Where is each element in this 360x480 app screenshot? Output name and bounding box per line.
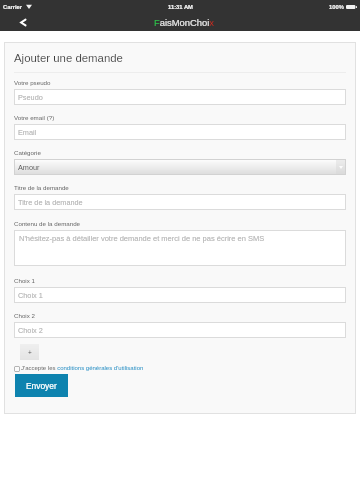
staticText: + xyxy=(28,349,32,356)
button[interactable]: Amour xyxy=(14,159,346,175)
button[interactable]: Envoyer xyxy=(15,374,68,397)
button[interactable]: Pseudo xyxy=(14,89,346,105)
staticText: Votre email (?) xyxy=(14,114,55,121)
staticText: Contenu de la demande xyxy=(14,220,81,227)
staticText: 11:31 AM xyxy=(168,4,193,10)
staticText: Carrier xyxy=(3,4,23,10)
staticText: Catégorie xyxy=(14,149,41,156)
button[interactable]: Titre de la demande xyxy=(14,194,346,210)
button[interactable]: Email xyxy=(14,124,346,140)
button[interactable]: Back xyxy=(0,13,34,31)
staticText: Email xyxy=(18,128,37,136)
staticText: Titre de la demande xyxy=(18,198,83,206)
staticText: Choix 1 xyxy=(18,291,43,299)
staticText: Titre de la demande xyxy=(14,184,69,191)
staticText: Ajouter une demande xyxy=(14,52,123,65)
staticText: J'accepte les conditions générales d'uti… xyxy=(21,365,144,372)
staticText: Votre pseudo xyxy=(14,79,51,86)
staticText: Pseudo xyxy=(18,93,43,101)
staticText: Choix 1 xyxy=(14,277,35,284)
button[interactable]: J'accepte les conditions générales d'uti… xyxy=(14,365,144,372)
staticText: Choix 2 xyxy=(18,326,43,334)
staticText: N'hésitez-pas à détailler votre demande … xyxy=(19,234,265,242)
staticText: FaisMonChoix xyxy=(154,17,215,28)
staticText: Envoyer xyxy=(26,381,57,390)
staticText: Choix 2 xyxy=(14,312,35,319)
other: Ouvrir la liste xyxy=(336,160,346,174)
button[interactable]: Choix 2 xyxy=(14,322,346,338)
button[interactable]: Choix 1 xyxy=(14,287,346,303)
staticText: Amour xyxy=(18,163,40,171)
button[interactable]: Ajouter un choix xyxy=(20,344,39,360)
button[interactable]: N'hésitez-pas à détailler votre demande … xyxy=(14,230,346,266)
staticText: 100% xyxy=(329,4,344,10)
